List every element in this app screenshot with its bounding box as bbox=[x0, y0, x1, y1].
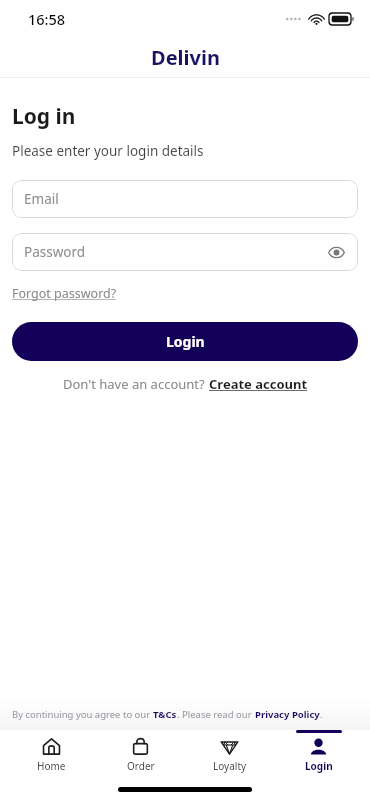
staticText: Home bbox=[37, 759, 66, 773]
staticText: 16:58 bbox=[28, 9, 66, 29]
staticText: T&Cs bbox=[153, 708, 177, 721]
staticText: Email bbox=[24, 190, 59, 208]
staticText: . bbox=[320, 708, 323, 721]
staticText: Create account bbox=[209, 375, 308, 393]
button[interactable]: Home bbox=[14, 730, 89, 778]
button[interactable]: Login bbox=[12, 322, 358, 361]
staticText: Login bbox=[305, 759, 333, 773]
staticText: Loyalty bbox=[213, 759, 247, 773]
staticText: By continuing you agree to our bbox=[12, 708, 153, 721]
staticText: Login bbox=[166, 332, 205, 351]
button[interactable]: Email bbox=[12, 180, 358, 218]
staticText: Password bbox=[24, 243, 86, 261]
button[interactable]: Login bbox=[281, 730, 356, 778]
button[interactable]: Loyalty bbox=[192, 730, 267, 778]
button[interactable]: T&Cs bbox=[153, 708, 177, 721]
button[interactable]: Show password bbox=[324, 240, 348, 264]
staticText: . Please read our bbox=[177, 708, 255, 721]
staticText: Delivin bbox=[151, 44, 220, 71]
staticText: Log in bbox=[12, 102, 76, 131]
button[interactable]: Create account bbox=[209, 375, 308, 393]
button[interactable]: Privacy Policy bbox=[255, 708, 320, 721]
staticText: Please enter your login details bbox=[12, 142, 204, 160]
button[interactable]: Password bbox=[12, 233, 358, 271]
button[interactable]: Order bbox=[103, 730, 178, 778]
staticText: Order bbox=[127, 759, 155, 773]
button[interactable]: Forgot password? bbox=[12, 285, 117, 302]
staticText: Forgot password? bbox=[12, 285, 117, 302]
staticText: Privacy Policy bbox=[255, 708, 320, 721]
staticText: Don't have an account? bbox=[63, 375, 209, 393]
